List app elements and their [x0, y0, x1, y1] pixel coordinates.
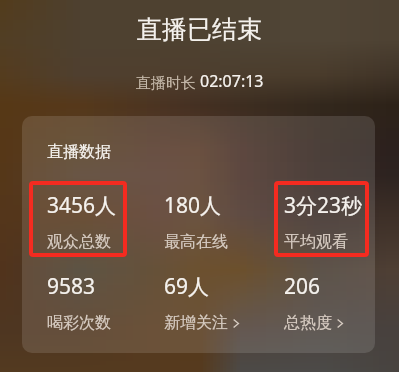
staticText: 02:07:13: [200, 70, 264, 92]
staticText: 直播数据: [47, 142, 111, 162]
staticText: 直播已结束: [0, 14, 399, 45]
staticText: 180人: [164, 191, 222, 220]
button[interactable]: 9583: [47, 272, 111, 333]
staticText: 3分23秒: [284, 191, 363, 220]
staticText: 69人: [164, 272, 210, 301]
button[interactable]: 206: [284, 272, 343, 333]
button[interactable]: 69人: [164, 272, 239, 333]
staticText: 最高在线: [164, 232, 228, 252]
button[interactable]: 3分23秒: [284, 191, 363, 252]
button[interactable]: 180人: [164, 191, 228, 252]
staticText: 喝彩次数: [47, 313, 111, 333]
staticText: 观众总数: [47, 232, 111, 252]
staticText: 9583: [47, 272, 96, 301]
staticText: 3456人: [47, 191, 117, 220]
staticText: 平均观看: [284, 232, 348, 252]
staticText: 新增关注: [164, 313, 228, 333]
staticText: 直播时长: [136, 72, 200, 92]
staticText: 总热度: [284, 313, 332, 333]
button[interactable]: 3456人: [47, 191, 117, 252]
staticText: 206: [284, 272, 321, 301]
